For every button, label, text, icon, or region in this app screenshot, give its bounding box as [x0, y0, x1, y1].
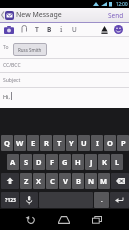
staticText: I [96, 138, 99, 148]
button[interactable]: H [72, 154, 84, 170]
staticText: New Message [16, 10, 62, 20]
button[interactable]: E [27, 135, 39, 151]
button[interactable]: X [33, 173, 45, 189]
staticText: K [102, 157, 107, 167]
button[interactable]: M [98, 173, 110, 189]
button[interactable]: ?123 [1, 192, 19, 208]
button[interactable] [110, 192, 129, 208]
button[interactable] [18, 23, 30, 36]
staticText: i [60, 25, 63, 35]
staticText: Russ Smith [18, 47, 42, 53]
button[interactable]: U [78, 135, 90, 151]
button[interactable]: Subject [0, 73, 129, 87]
staticText: G [62, 157, 68, 167]
staticText: P [121, 138, 126, 148]
staticText: Y [69, 138, 74, 148]
staticText: CC/BCC [3, 62, 21, 69]
button[interactable]: T [31, 23, 43, 36]
button[interactable]: A [7, 154, 19, 170]
button[interactable]: T [53, 135, 65, 151]
button[interactable]: S [20, 154, 32, 170]
button[interactable]: N [85, 173, 97, 189]
staticText: R [44, 138, 49, 148]
staticText: A [10, 157, 16, 167]
staticText: Z [24, 176, 29, 186]
staticText: ?123 [5, 197, 16, 204]
button[interactable]: W [14, 135, 26, 151]
button[interactable]: To [3, 37, 129, 58]
button[interactable]: Z [20, 173, 32, 189]
button[interactable] [19, 211, 41, 228]
button[interactable] [53, 211, 75, 228]
staticText: O [107, 138, 113, 148]
button[interactable]: K [98, 154, 110, 170]
button[interactable] [20, 192, 38, 208]
button[interactable]: J [85, 154, 97, 170]
staticText: Subject [3, 77, 21, 84]
staticText: B [76, 176, 81, 186]
staticText: 12:00 [116, 1, 128, 7]
staticText: M [100, 176, 108, 186]
staticText: N [88, 176, 95, 186]
staticText: L [115, 157, 120, 167]
button[interactable]: i [55, 23, 67, 36]
button[interactable]: D [33, 154, 45, 170]
button[interactable]: L [111, 154, 123, 170]
button[interactable]: B [72, 173, 84, 189]
button[interactable]: P [117, 135, 129, 151]
staticText: U [72, 25, 77, 34]
button[interactable]: O [104, 135, 116, 151]
staticText: Q [4, 138, 10, 148]
button[interactable]: Y [66, 135, 77, 151]
button[interactable]: . [94, 192, 109, 208]
button[interactable]: Hi, [0, 88, 129, 108]
staticText: . [101, 196, 103, 204]
staticText: B [47, 25, 52, 34]
button[interactable]: CC/BCC [0, 59, 129, 72]
staticText: V [63, 176, 68, 186]
staticText: X [36, 176, 42, 186]
button[interactable] [112, 23, 124, 36]
staticText: T [35, 25, 39, 34]
button[interactable]: Send [103, 8, 129, 22]
staticText: S [24, 157, 29, 167]
button[interactable] [98, 23, 110, 36]
staticText: U [81, 138, 87, 148]
button[interactable]: V [59, 173, 71, 189]
staticText: C [50, 176, 55, 186]
button[interactable]: C [46, 173, 58, 189]
button[interactable]: G [59, 154, 71, 170]
button[interactable] [3, 23, 15, 36]
button[interactable]: I [91, 135, 103, 151]
staticText: W [16, 138, 24, 148]
button[interactable]: U [68, 23, 80, 36]
button[interactable] [111, 173, 129, 189]
button[interactable] [86, 211, 108, 228]
staticText: D [36, 157, 42, 167]
button[interactable]: Russ Smith [13, 43, 47, 56]
staticText: F [50, 157, 55, 167]
button[interactable]: Q [1, 135, 13, 151]
staticText: Hi, [3, 93, 10, 100]
staticText: H [75, 157, 81, 167]
button[interactable]: New Message [0, 10, 62, 20]
button[interactable]: B [43, 23, 55, 36]
button[interactable]: F [46, 154, 58, 170]
staticText: To [3, 44, 9, 51]
staticText: T [57, 138, 62, 148]
staticText: Send [108, 11, 124, 20]
button[interactable] [1, 173, 19, 189]
staticText: E [31, 138, 36, 148]
button[interactable]: R [40, 135, 52, 151]
staticText: J [90, 157, 93, 167]
